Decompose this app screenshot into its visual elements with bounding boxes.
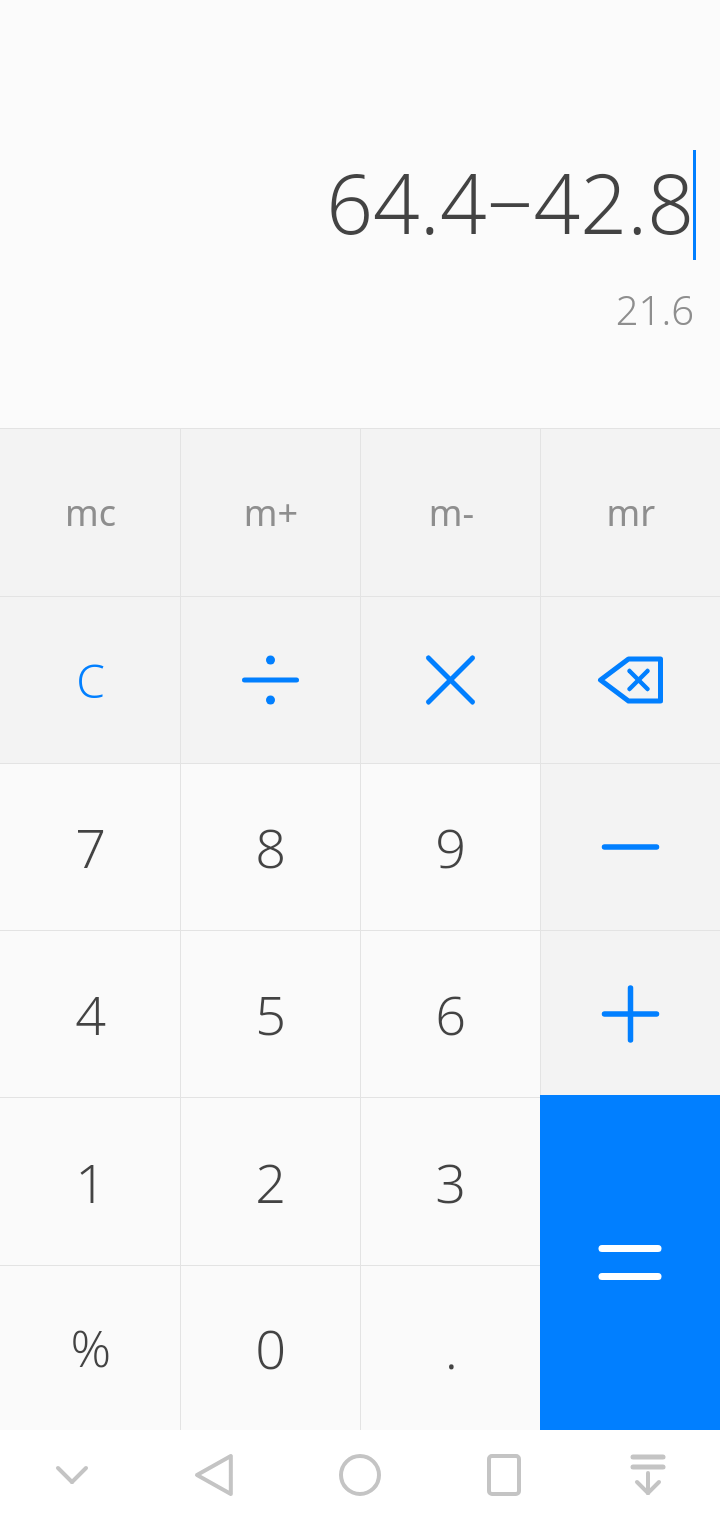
button[interactable]: 8 <box>181 764 360 930</box>
staticText: 2 <box>255 1145 286 1219</box>
button[interactable]: Divide <box>181 597 360 763</box>
button[interactable]: Hide keyboard <box>0 1430 144 1520</box>
button[interactable]: 6 <box>361 931 540 1097</box>
button[interactable]: . <box>361 1266 540 1430</box>
button[interactable]: mc <box>0 429 180 596</box>
button[interactable]: C <box>0 597 180 763</box>
staticText: . <box>444 1311 458 1385</box>
button[interactable]: m+ <box>181 429 360 596</box>
button[interactable]: % <box>0 1266 180 1430</box>
staticText: mc <box>65 488 116 537</box>
button[interactable]: Multiply <box>361 597 540 763</box>
button[interactable]: Collapse <box>576 1430 720 1520</box>
button[interactable]: 5 <box>181 931 360 1097</box>
button[interactable]: mr <box>541 429 720 596</box>
staticText: 21.6 <box>615 282 694 336</box>
button[interactable]: Equals <box>540 1095 720 1430</box>
staticText: C <box>76 649 105 712</box>
staticText: m- <box>428 488 474 537</box>
staticText: 3 <box>435 1145 466 1219</box>
staticText: 7 <box>75 810 106 884</box>
staticText: 5 <box>255 977 286 1051</box>
button[interactable]: Back <box>144 1430 288 1520</box>
staticText: 6 <box>435 977 466 1051</box>
staticText: 0 <box>255 1311 286 1385</box>
button[interactable]: Recents <box>432 1430 576 1520</box>
staticText: 8 <box>255 810 286 884</box>
button[interactable]: 7 <box>0 764 180 930</box>
button[interactable]: 2 <box>181 1098 360 1265</box>
button[interactable]: Backspace <box>541 597 720 763</box>
staticText: 9 <box>435 810 466 884</box>
button[interactable]: 3 <box>361 1098 540 1265</box>
staticText: m+ <box>243 488 298 537</box>
button[interactable]: m- <box>361 429 540 596</box>
button[interactable]: 9 <box>361 764 540 930</box>
button[interactable]: 0 <box>181 1266 360 1430</box>
button[interactable]: 4 <box>0 931 180 1097</box>
staticText: 4 <box>75 977 106 1051</box>
button[interactable]: Minus <box>541 764 720 930</box>
button[interactable]: 1 <box>0 1098 180 1265</box>
button[interactable]: Plus <box>541 931 720 1097</box>
staticText: 64.4−42.8 <box>326 146 694 258</box>
staticText: mr <box>606 488 655 537</box>
staticText: % <box>70 1314 111 1382</box>
button[interactable]: Home <box>288 1430 432 1520</box>
staticText: 1 <box>75 1145 106 1219</box>
